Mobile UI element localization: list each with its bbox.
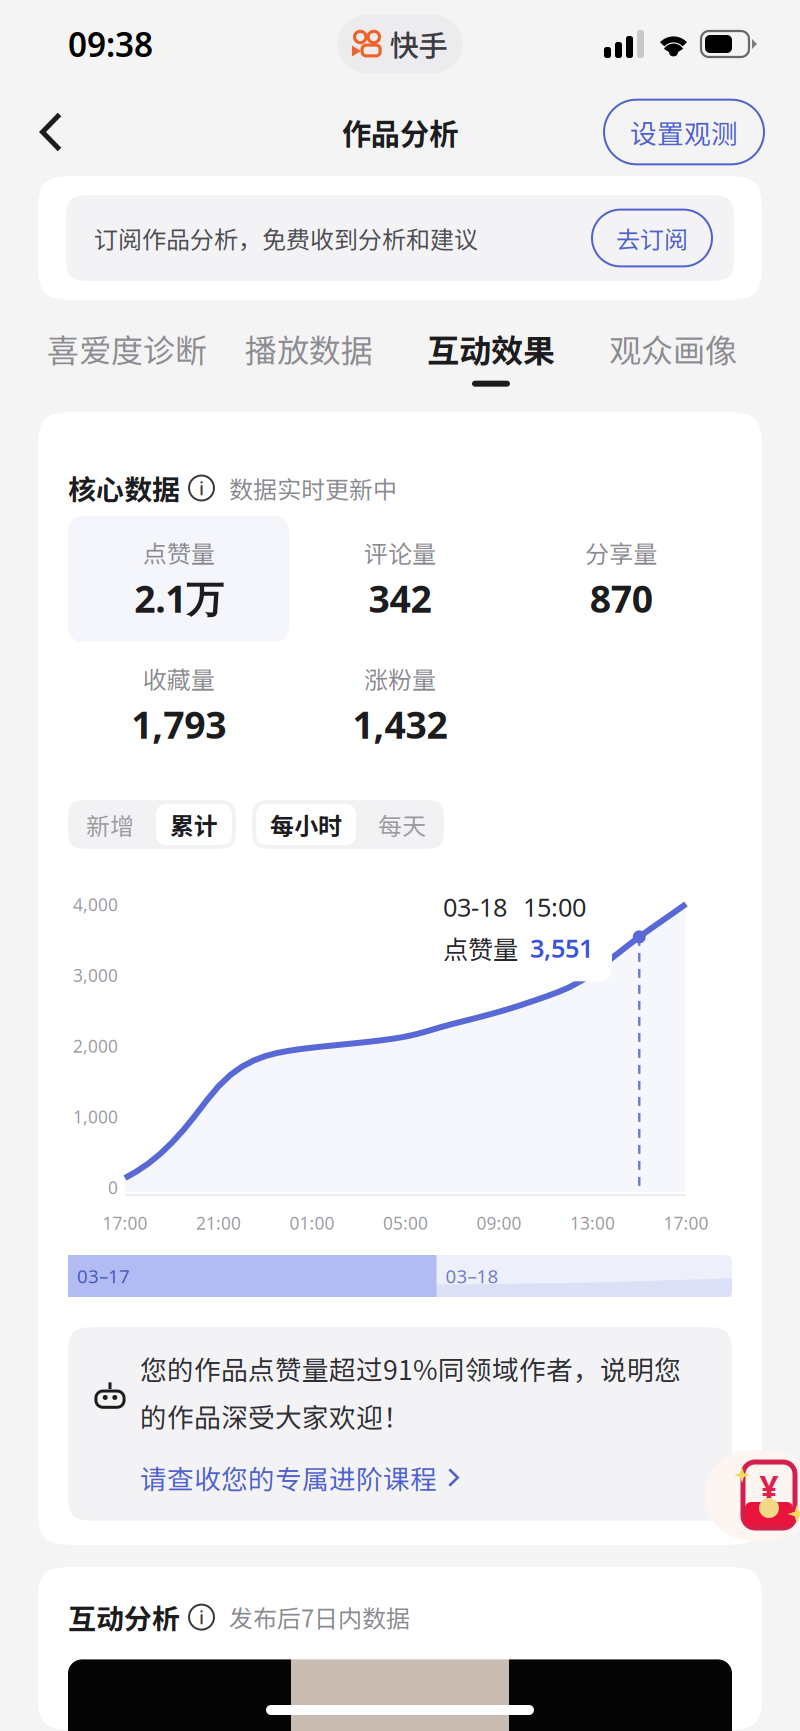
staticText: 播放数据 xyxy=(245,325,373,372)
button[interactable]: 互动效果 xyxy=(400,325,582,387)
staticText: 去订阅 xyxy=(616,221,688,255)
staticText: 13:00 xyxy=(570,1211,615,1234)
staticText: 0 xyxy=(108,1176,118,1199)
staticText: 分享量 xyxy=(585,535,657,570)
staticText: 点赞量 xyxy=(443,930,518,966)
staticText: 互动分析 xyxy=(68,1597,180,1637)
button[interactable]: 喜爱度诊断 xyxy=(36,325,218,387)
staticText: 2.1万 xyxy=(134,574,223,623)
staticText: i xyxy=(199,1605,204,1629)
button[interactable]: 领取奖励 xyxy=(696,1450,800,1540)
button[interactable]: 播放数据 xyxy=(218,325,400,387)
staticText: 09:38 xyxy=(68,22,153,66)
staticText: 涨粉量 xyxy=(364,661,436,696)
staticText: 每小时 xyxy=(270,807,342,842)
staticText: ¥ xyxy=(759,1465,778,1509)
staticText: 快手 xyxy=(389,23,447,65)
staticText: 您的作品点赞量超过91%同领域作者，说明您 xyxy=(140,1349,681,1388)
staticText: 累计 xyxy=(170,807,218,842)
staticText: 作品分析 xyxy=(342,111,458,153)
staticText: 1,432 xyxy=(352,700,447,749)
button[interactable]: 观众画像 xyxy=(582,325,764,387)
staticText: 评论量 xyxy=(364,535,436,570)
staticText: 数据实时更新中 xyxy=(229,471,397,505)
staticText: 05:00 xyxy=(383,1211,428,1234)
staticText: 03-18 xyxy=(443,890,507,924)
staticText: 的作品深受大家欢迎！ xyxy=(140,1397,410,1435)
button[interactable]: 返回 xyxy=(0,92,92,172)
staticText: 1,000 xyxy=(73,1105,118,1128)
staticText: 点赞量 xyxy=(143,535,215,570)
button[interactable]: 请查收您的专属进阶课程 xyxy=(94,1435,706,1497)
button[interactable]: 每小时 xyxy=(252,800,360,849)
staticText: 请查收您的专属进阶课程 xyxy=(140,1458,437,1497)
staticText: 观众画像 xyxy=(609,325,737,372)
button[interactable]: 新增 xyxy=(68,800,152,849)
button[interactable]: 每天 xyxy=(360,800,444,849)
staticText: 01:00 xyxy=(289,1211,334,1234)
staticText: 09:00 xyxy=(476,1211,521,1234)
button[interactable]: 去订阅 xyxy=(592,210,712,266)
staticText: 17:00 xyxy=(102,1211,147,1234)
staticText: 3,551 xyxy=(530,931,593,965)
staticText: 设置观测 xyxy=(630,113,738,151)
staticText: 新增 xyxy=(86,807,134,842)
staticText: 发布后7日内数据 xyxy=(229,1600,410,1634)
staticText: 3,000 xyxy=(73,964,118,987)
staticText: 2,000 xyxy=(73,1034,118,1057)
button[interactable]: 设置观测 xyxy=(604,100,764,164)
staticText: 互动效果 xyxy=(427,325,555,372)
staticText: 03–17 xyxy=(77,1264,130,1288)
staticText: 订阅作品分析，免费收到分析和建议 xyxy=(94,221,478,255)
staticText: 收藏量 xyxy=(143,661,215,696)
staticText: 870 xyxy=(590,574,653,623)
staticText: 342 xyxy=(368,574,431,623)
staticText: 21:00 xyxy=(196,1211,241,1234)
staticText: 15:00 xyxy=(523,890,586,924)
staticText: 核心数据 xyxy=(68,468,180,508)
staticText: 17:00 xyxy=(663,1211,708,1234)
staticText: 4,000 xyxy=(73,893,118,916)
button[interactable]: 累计 xyxy=(152,800,236,849)
staticText: 03–18 xyxy=(445,1264,498,1288)
staticText: i xyxy=(199,476,204,500)
staticText: 每天 xyxy=(378,807,426,842)
staticText: 喜爱度诊断 xyxy=(47,325,207,372)
staticText: 1,793 xyxy=(131,700,226,749)
